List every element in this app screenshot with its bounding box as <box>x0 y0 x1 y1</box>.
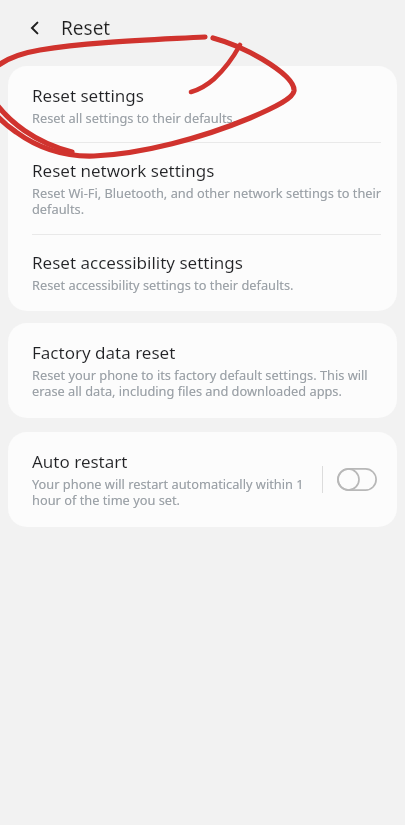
staticText: Reset accessibility settings <box>32 251 243 274</box>
staticText: Reset network settings <box>32 159 215 182</box>
staticText: Reset all settings to their defaults. <box>32 109 237 126</box>
button[interactable]: Auto restart <box>8 432 397 527</box>
button[interactable]: Auto restart toggle, off <box>337 468 377 491</box>
button[interactable]: Reset accessibility settings <box>8 235 397 311</box>
button[interactable]: Reset network settings <box>8 143 397 234</box>
button[interactable]: Reset settings <box>8 66 397 142</box>
staticText: Reset <box>61 15 111 41</box>
staticText: Reset settings <box>32 84 144 107</box>
staticText: Reset Wi-Fi, Bluetooth, and other networ… <box>32 184 383 218</box>
staticText: Reset accessibility settings to their de… <box>32 276 294 293</box>
staticText: Factory data reset <box>32 341 176 364</box>
staticText: Auto restart <box>32 450 128 473</box>
staticText: Your phone will restart automatically wi… <box>32 475 316 509</box>
button[interactable]: Back <box>18 11 52 45</box>
button[interactable]: Factory data reset <box>8 323 397 418</box>
staticText: Reset your phone to its factory default … <box>32 366 383 400</box>
